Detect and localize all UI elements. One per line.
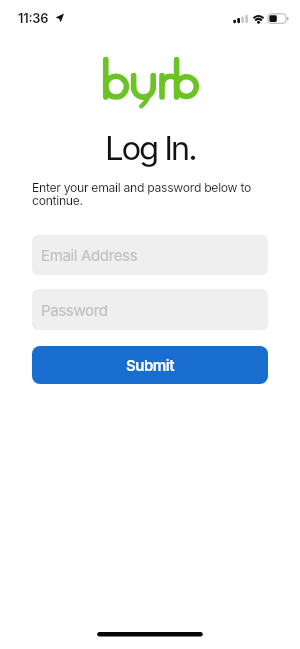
staticText: Enter your email and password below to — [32, 180, 251, 195]
staticText: Password — [41, 301, 108, 319]
staticText: 11:36 — [18, 11, 49, 26]
button[interactable]: Password — [32, 289, 268, 330]
button[interactable]: Email Address — [32, 235, 268, 275]
staticText: Submit — [126, 356, 175, 374]
staticText: continue. — [32, 193, 83, 208]
staticText: Email Address — [41, 246, 138, 264]
staticText: Log In. — [105, 128, 196, 168]
button[interactable]: Submit — [32, 346, 268, 384]
